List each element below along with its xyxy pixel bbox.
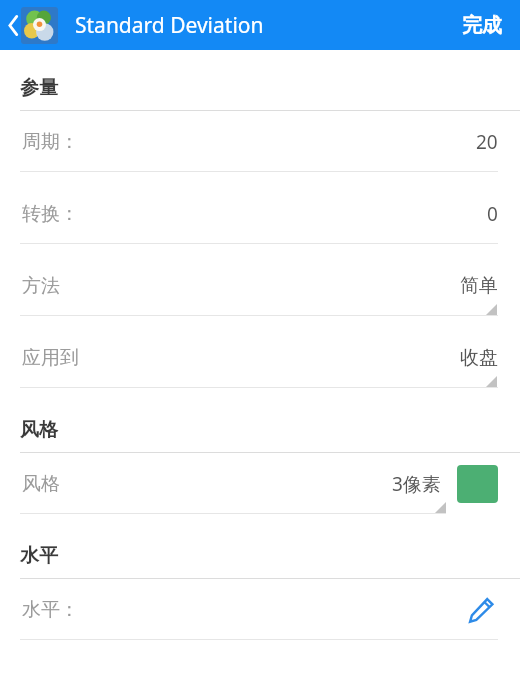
button[interactable]: Colour: [457, 465, 498, 503]
staticText: 周期：: [22, 130, 79, 154]
button[interactable]: 风格: [0, 453, 457, 514]
staticText: 20: [476, 129, 498, 155]
staticText: 水平: [20, 544, 58, 568]
staticText: 风格: [20, 418, 58, 442]
staticText: 0: [487, 201, 498, 227]
button[interactable]: 水平：: [0, 579, 520, 651]
button[interactable]: 周期：: [0, 111, 520, 183]
staticText: 收盘: [460, 346, 498, 370]
staticText: 完成: [462, 13, 502, 38]
staticText: 参量: [20, 76, 58, 100]
button[interactable]: Edit levels: [464, 593, 498, 627]
staticText: Standard Deviation: [75, 11, 264, 40]
staticText: 3像素: [392, 471, 441, 497]
staticText: 水平：: [22, 598, 79, 622]
staticText: 简单: [460, 274, 498, 298]
button[interactable]: 应用到: [0, 327, 520, 399]
button[interactable]: 方法: [0, 255, 520, 327]
button[interactable]: Back: [0, 0, 26, 50]
staticText: 转换：: [22, 202, 79, 226]
button[interactable]: App icon: [21, 7, 58, 44]
staticText: 风格: [22, 472, 60, 496]
button[interactable]: 完成: [444, 0, 520, 50]
staticText: 应用到: [22, 346, 79, 370]
staticText: 方法: [22, 274, 60, 298]
button[interactable]: 转换：: [0, 183, 520, 255]
